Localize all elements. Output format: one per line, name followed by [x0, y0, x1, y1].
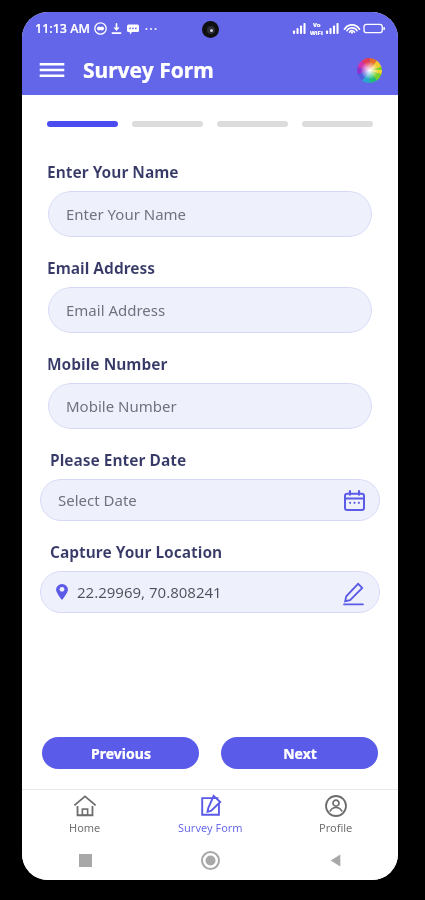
staticText: Email Address	[66, 300, 166, 320]
button[interactable]: Select Date	[40, 479, 380, 521]
button[interactable]: Mobile Number	[48, 383, 372, 429]
other: Pick date	[345, 491, 364, 510]
button[interactable]: Step 4	[302, 121, 373, 127]
staticText: Mobile Number	[47, 353, 168, 374]
staticText: Email Address	[47, 257, 156, 278]
staticText: Profile	[319, 820, 353, 835]
button[interactable]: Survey Form	[148, 790, 273, 840]
button[interactable]: Home	[148, 840, 273, 880]
staticText: Mobile Number	[66, 396, 177, 416]
button[interactable]: 22.29969, 70.808241	[40, 571, 380, 613]
staticText: 11:13 AM	[35, 20, 90, 37]
button[interactable]: Recent apps	[22, 840, 148, 880]
button[interactable]: Theme color picker	[354, 55, 384, 85]
staticText: Enter Your Name	[47, 161, 179, 182]
staticText: WiFi	[310, 29, 323, 37]
staticText: Previous	[91, 744, 151, 763]
staticText: Please Enter Date	[50, 449, 187, 470]
staticText: Survey Form	[83, 56, 214, 85]
button[interactable]: Enter Your Name	[48, 191, 372, 237]
staticText: Enter Your Name	[66, 204, 187, 224]
button[interactable]: Step 3	[217, 121, 288, 127]
button[interactable]: Email Address	[48, 287, 372, 333]
button[interactable]: Edit location	[342, 581, 364, 603]
staticText: Home	[69, 820, 101, 835]
button[interactable]: Home	[22, 790, 148, 840]
staticText: Next	[283, 744, 317, 763]
staticText: Capture Your Location	[50, 541, 223, 562]
staticText: 22.29969, 70.808241	[77, 582, 222, 602]
button[interactable]: Step 1	[47, 121, 118, 127]
staticText: Survey Form	[178, 820, 243, 835]
button[interactable]: Previous	[42, 737, 199, 769]
button[interactable]: Back	[273, 840, 398, 880]
button[interactable]: Step 2	[132, 121, 203, 127]
staticText: Vo	[313, 21, 321, 29]
button[interactable]: Next	[221, 737, 378, 769]
staticText: Select Date	[58, 490, 137, 510]
button[interactable]: Profile	[273, 790, 398, 840]
button[interactable]: Open navigation menu	[36, 54, 68, 86]
